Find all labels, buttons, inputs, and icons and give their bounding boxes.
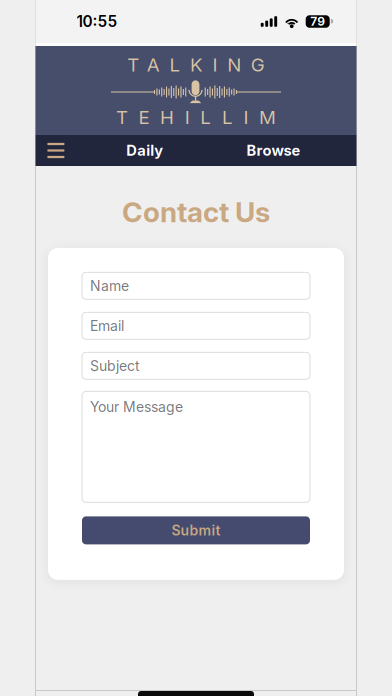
staticText: Daily <box>126 142 163 159</box>
button[interactable]: Submit <box>82 516 310 544</box>
button[interactable]: Open menu <box>39 135 73 166</box>
staticText: Browse <box>246 142 300 159</box>
staticText: 10:55 <box>76 12 117 31</box>
staticText: 79 <box>310 14 325 29</box>
staticText: TALKING <box>127 53 265 76</box>
staticText: Name <box>90 277 129 294</box>
staticText: TEHILLIM <box>116 106 276 129</box>
staticText: Your Message <box>90 398 183 415</box>
button[interactable]: Browse <box>240 135 306 166</box>
staticText: Contact Us <box>122 195 270 229</box>
staticText: Subject <box>90 357 140 374</box>
staticText: Submit <box>171 522 220 539</box>
button[interactable]: Daily <box>118 135 172 166</box>
staticText: Email <box>90 317 124 334</box>
